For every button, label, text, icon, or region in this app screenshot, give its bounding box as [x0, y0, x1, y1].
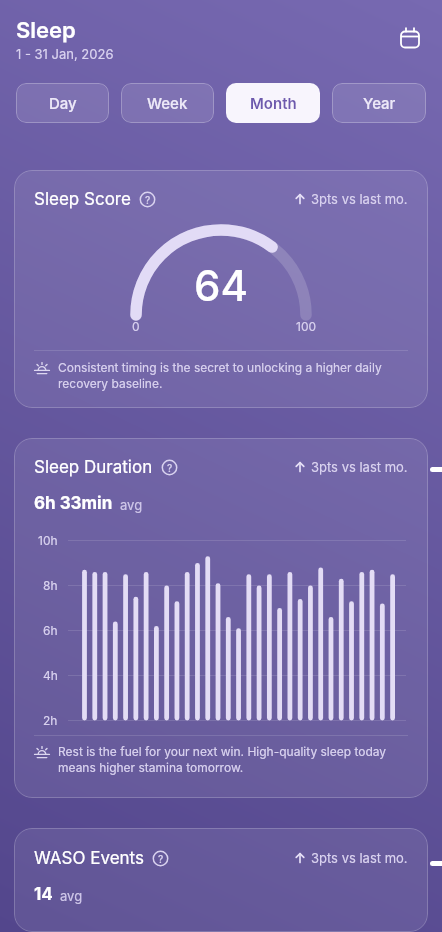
staticText: 3pts vs last mo. [311, 850, 408, 866]
staticText: WASO Events [34, 848, 144, 869]
button[interactable]: Week [121, 83, 214, 123]
staticText: 10h [38, 533, 58, 548]
staticText: 100 [296, 319, 317, 334]
staticText: Rest is the fuel for your next win. High… [58, 744, 387, 775]
staticText: 3pts vs last mo. [311, 191, 408, 207]
button[interactable]: ? [139, 191, 156, 208]
staticText: ? [145, 194, 151, 206]
staticText: Sleep [16, 17, 76, 44]
staticText: avg [120, 497, 143, 513]
staticText: 3pts vs last mo. [311, 459, 408, 475]
staticText: 1 - 31 Jan, 2026 [16, 46, 114, 62]
staticText: ? [167, 462, 173, 474]
staticText: ? [158, 853, 164, 865]
staticText: 2h [43, 713, 58, 728]
staticText: Month [250, 94, 297, 112]
staticText: Sleep Score [34, 189, 131, 210]
staticText: 8h [43, 578, 58, 593]
staticText: 0 [132, 319, 140, 334]
staticText: Week [147, 94, 188, 112]
staticText: 64 [194, 260, 249, 311]
button[interactable]: Day [16, 83, 109, 123]
staticText: Sleep Duration [34, 457, 153, 478]
staticText: Year [363, 94, 396, 112]
staticText: 4h [43, 668, 58, 683]
staticText: Day [49, 94, 77, 112]
button[interactable]: Month [226, 83, 320, 123]
staticText: 6h 33min [34, 493, 113, 514]
button[interactable] [399, 27, 421, 49]
staticText: avg [60, 888, 83, 904]
staticText: 14 [34, 884, 53, 905]
staticText: Consistent timing is the secret to unloc… [58, 360, 382, 391]
button[interactable]: Year [332, 83, 426, 123]
button[interactable]: ? [152, 850, 169, 867]
staticText: 6h [43, 623, 58, 638]
button[interactable]: ? [161, 459, 178, 476]
